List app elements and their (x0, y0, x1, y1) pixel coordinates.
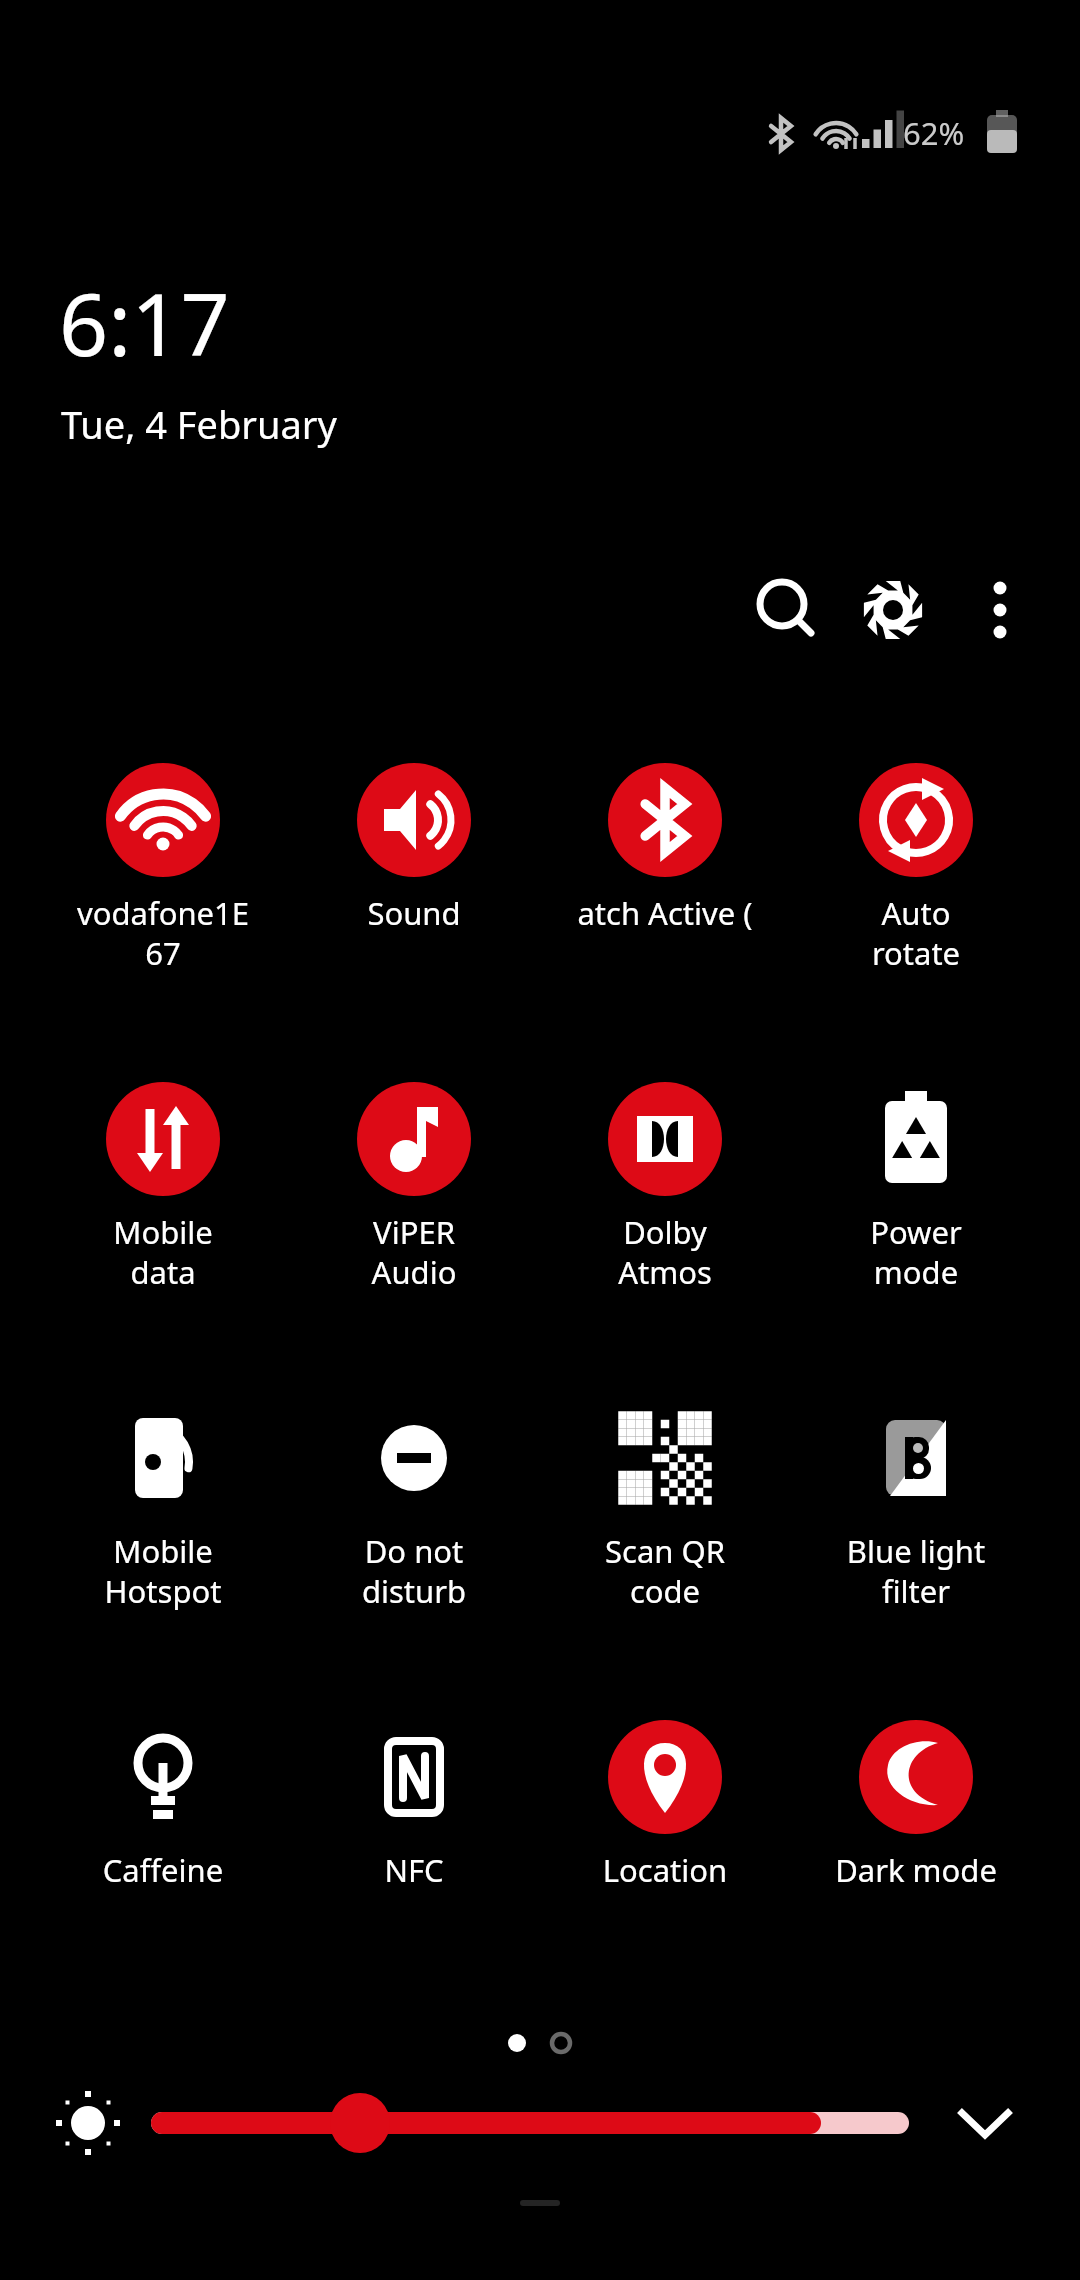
staticText: NFC (299, 1849, 529, 1891)
button[interactable]: Settings (851, 568, 935, 652)
button[interactable]: Dark mode (801, 1715, 1031, 1891)
button[interactable]: Location (550, 1715, 780, 1891)
button[interactable]: Caffeine (48, 1715, 278, 1891)
button[interactable]: ViPER Audio (299, 1077, 529, 1293)
button[interactable]: Auto rotate (801, 758, 1031, 974)
button[interactable]: NFC (299, 1715, 529, 1891)
button[interactable] (150, 2080, 910, 2166)
button[interactable]: Mobile data (48, 1077, 278, 1293)
staticText: atch Active ( (550, 892, 780, 934)
staticText: 6:17 (59, 264, 230, 381)
staticText: Mobile Hotspot (48, 1530, 278, 1612)
staticText: Auto rotate (801, 892, 1031, 974)
staticText: Caffeine (48, 1849, 278, 1891)
button[interactable]: Do not disturb (299, 1396, 529, 1612)
button[interactable]: Sound (299, 758, 529, 934)
button[interactable]: atch Active ( (550, 758, 780, 934)
staticText: Dark mode (801, 1849, 1031, 1891)
button[interactable]: Power mode (801, 1077, 1031, 1293)
staticText: vodafone1E 67 (48, 892, 278, 974)
staticText: Mobile data (48, 1211, 278, 1293)
button[interactable]: Mobile Hotspot (48, 1396, 278, 1612)
staticText: Dolby Atmos (550, 1211, 780, 1293)
staticText: Blue light filter (801, 1530, 1031, 1612)
button[interactable]: Expand (940, 2080, 1030, 2166)
staticText: Sound (299, 892, 529, 934)
button[interactable]: vodafone1E 67 (48, 758, 278, 974)
button[interactable]: Scan QR code (550, 1396, 780, 1612)
staticText: Do not disturb (299, 1530, 529, 1612)
staticText: Scan QR code (550, 1530, 780, 1612)
button[interactable]: More options (958, 568, 1042, 652)
button[interactable]: Search (745, 568, 829, 652)
staticText: Power mode (801, 1211, 1031, 1293)
staticText: Tue, 4 February (61, 398, 337, 450)
button[interactable]: Blue light filter (801, 1396, 1031, 1612)
staticText: ViPER Audio (299, 1211, 529, 1293)
staticText: Location (550, 1849, 780, 1891)
button[interactable]: Dolby Atmos (550, 1077, 780, 1293)
button[interactable]: Brightness (40, 2080, 136, 2166)
staticText: 62% (903, 112, 965, 154)
